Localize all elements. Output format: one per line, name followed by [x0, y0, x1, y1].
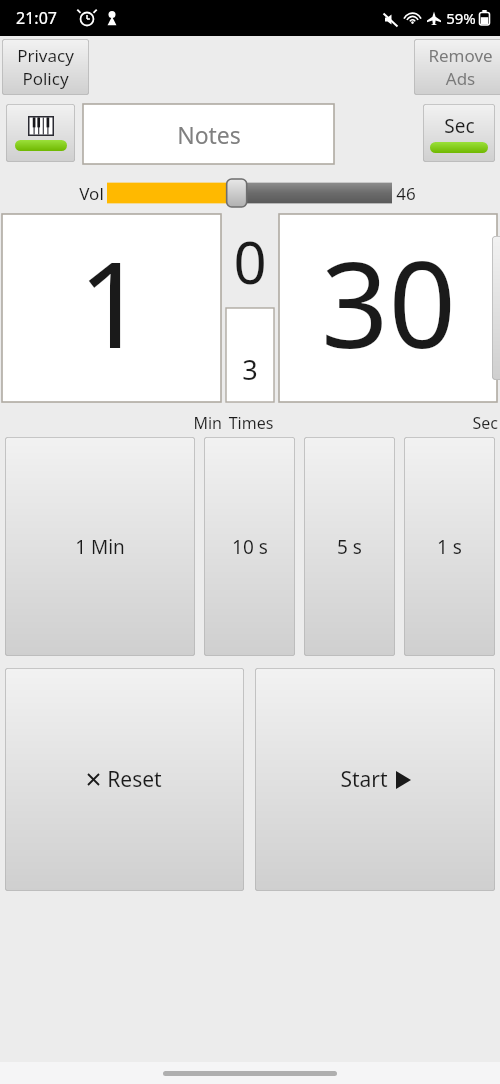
staticText: 59%: [446, 8, 476, 28]
staticText: 1 s: [437, 534, 462, 560]
staticText: 46: [396, 182, 416, 205]
staticText: Min: [160, 412, 222, 434]
staticText: Start: [340, 765, 388, 794]
button[interactable]: [6, 104, 75, 162]
staticText: 3: [242, 351, 258, 388]
staticText: Vol: [79, 182, 104, 205]
button[interactable]: Reset: [5, 668, 244, 891]
staticText: Reset: [107, 765, 162, 794]
staticText: 5 s: [337, 534, 362, 560]
staticText: Times: [224, 412, 278, 434]
button[interactable]: Start: [255, 668, 495, 891]
staticText: 30: [321, 222, 456, 383]
staticText: Sec: [448, 412, 498, 434]
staticText: 21:07: [16, 7, 57, 29]
staticText: Privacy Policy: [17, 44, 74, 90]
staticText: Notes: [177, 119, 241, 150]
button[interactable]: Sec: [423, 104, 495, 162]
staticText: 0: [226, 222, 274, 301]
button[interactable]: 30: [279, 214, 497, 402]
button[interactable]: 3: [226, 308, 274, 402]
button[interactable]: 1: [2, 214, 221, 402]
button[interactable]: 1 s: [404, 437, 495, 656]
button[interactable]: 5 s: [304, 437, 395, 656]
staticText: 1 Min: [75, 534, 125, 560]
staticText: 1: [78, 222, 146, 383]
button[interactable]: 10 s: [204, 437, 295, 656]
button[interactable]: [107, 179, 392, 207]
button[interactable]: Remove Ads: [414, 39, 500, 95]
button[interactable]: 1 Min: [5, 437, 195, 656]
staticText: 10 s: [232, 534, 268, 560]
button[interactable]: Notes: [83, 104, 334, 164]
button[interactable]: Privacy Policy: [2, 39, 89, 95]
staticText: Remove Ads: [428, 44, 493, 90]
staticText: Sec: [444, 113, 475, 139]
